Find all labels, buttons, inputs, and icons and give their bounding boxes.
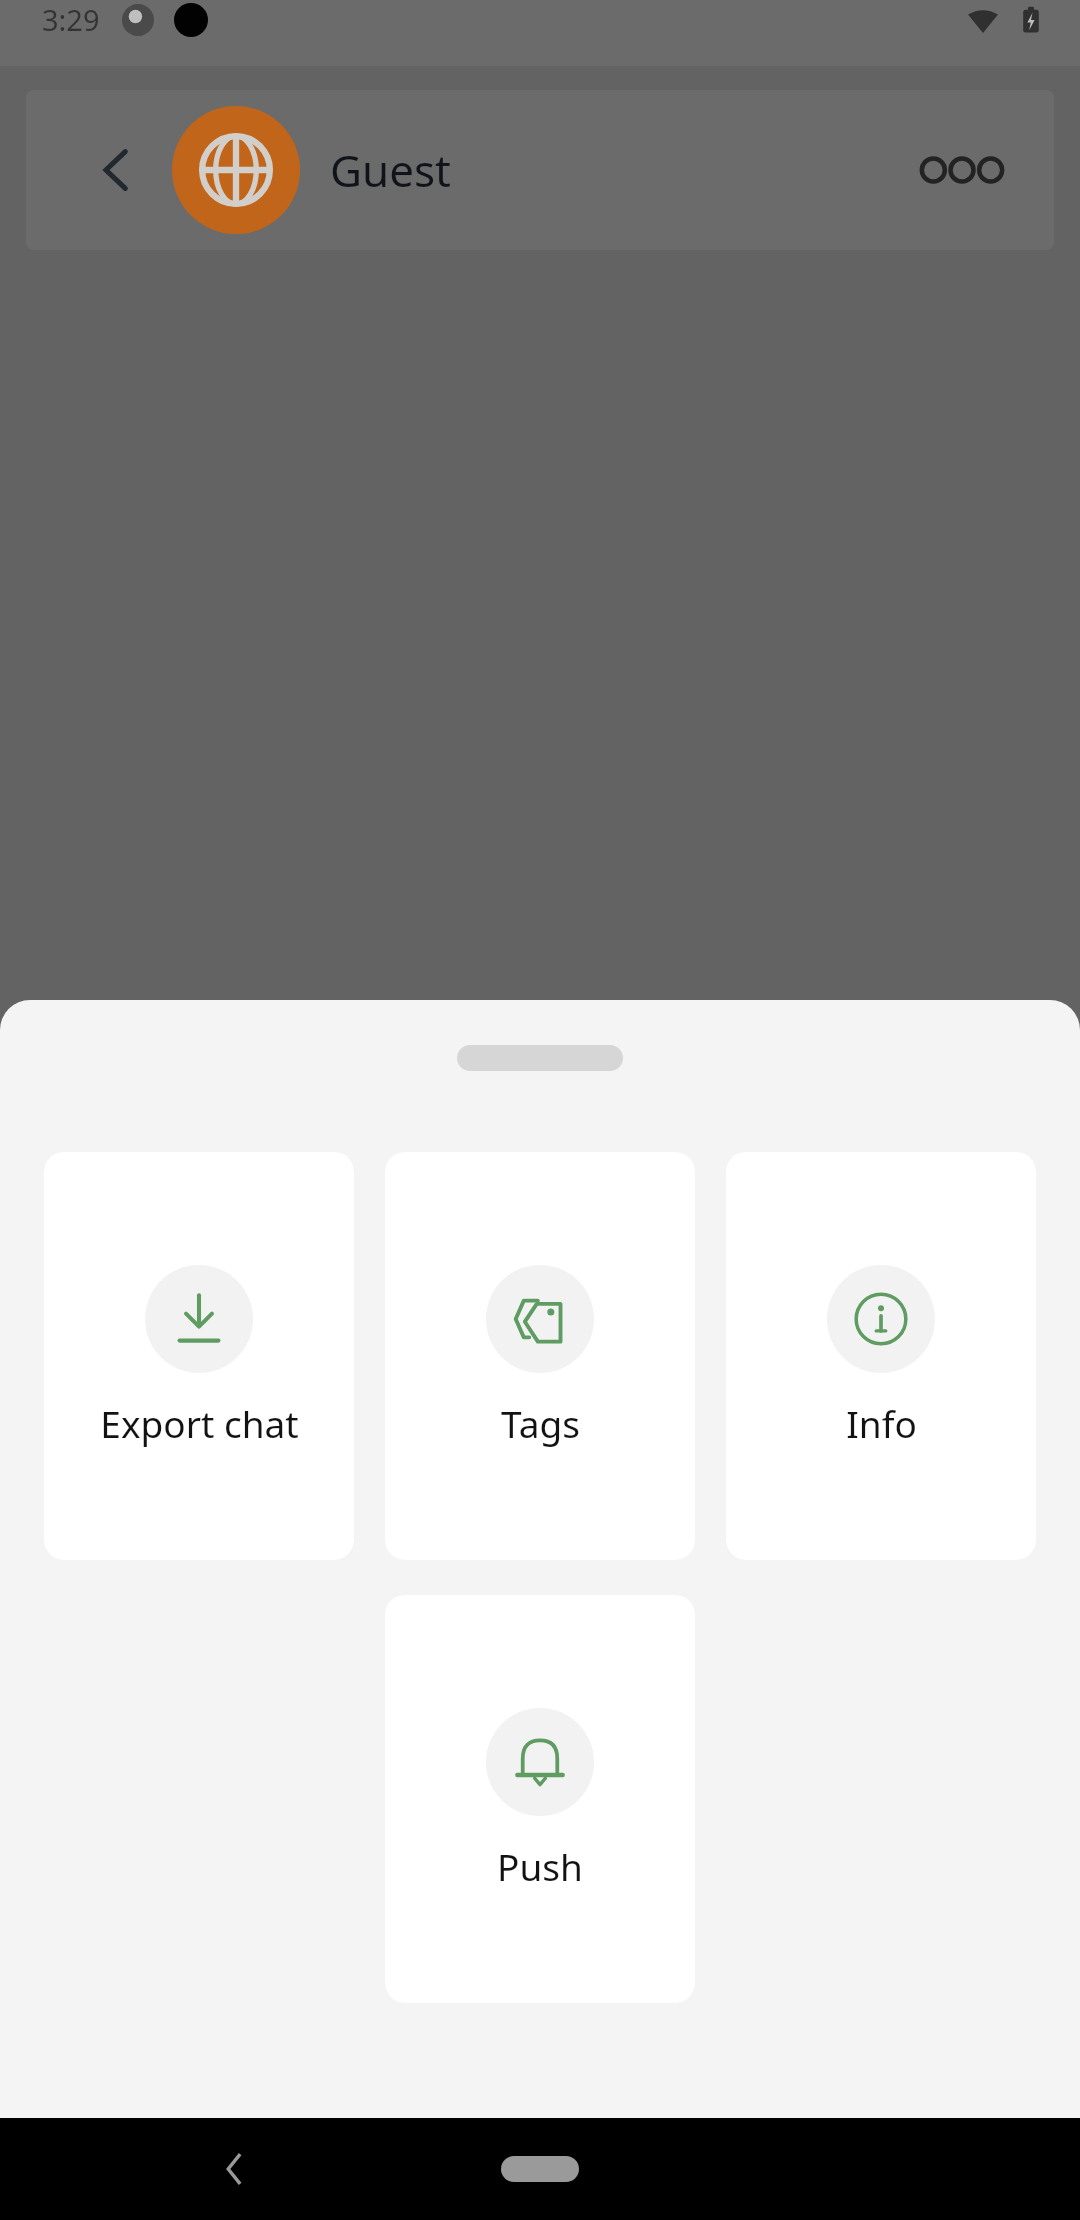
staticText: 3:29 [42, 0, 100, 39]
staticText: Push [497, 1841, 583, 1891]
button[interactable]: Push [385, 1595, 695, 2003]
button[interactable]: Info [726, 1152, 1036, 1560]
button[interactable]: Back [86, 139, 148, 201]
button[interactable]: Profile photo [172, 106, 300, 234]
button[interactable]: More options [914, 134, 1010, 206]
button[interactable]: Home [501, 2156, 579, 2182]
staticText: Export chat [100, 1398, 299, 1448]
button[interactable]: Tags [385, 1152, 695, 1560]
button[interactable]: Drag handle [457, 1045, 623, 1071]
button[interactable]: Back [200, 2134, 270, 2204]
staticText: Tags [501, 1398, 580, 1448]
staticText: Guest [330, 140, 451, 200]
staticText: Info [846, 1398, 917, 1448]
button[interactable]: Export chat [44, 1152, 354, 1560]
